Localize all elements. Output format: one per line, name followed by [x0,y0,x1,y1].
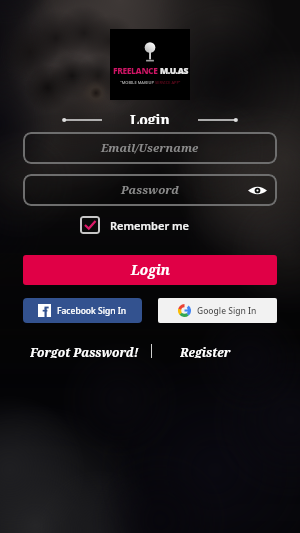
button[interactable]: Google Sign In [158,298,277,323]
staticText: Remember me [110,218,190,233]
button[interactable]: Register [180,344,231,358]
button[interactable]: Facebook Sign In [23,298,142,323]
button[interactable]: Remember me [80,216,190,234]
button[interactable]: Email/Username [23,132,277,164]
staticText: Login [131,261,170,279]
button[interactable]: Login [23,255,277,285]
staticText: FREELANCE [113,65,158,77]
staticText: Facebook Sign In [57,305,127,317]
button[interactable]: Forgot Password! [30,344,139,358]
staticText: Password [121,182,180,198]
button[interactable]: Password [23,174,277,206]
staticText: Forgot Password! [30,344,139,358]
staticText: M.U.AS [160,65,188,77]
staticText: Email/Username [101,140,199,156]
staticText: Login [130,110,170,124]
staticText: Google Sign In [197,305,257,317]
staticText: SERVICE APP" [155,80,181,85]
staticText: "MOBILE MAKEUP [120,80,155,85]
button[interactable]: Show password [246,179,268,201]
staticText: Register [180,344,231,358]
